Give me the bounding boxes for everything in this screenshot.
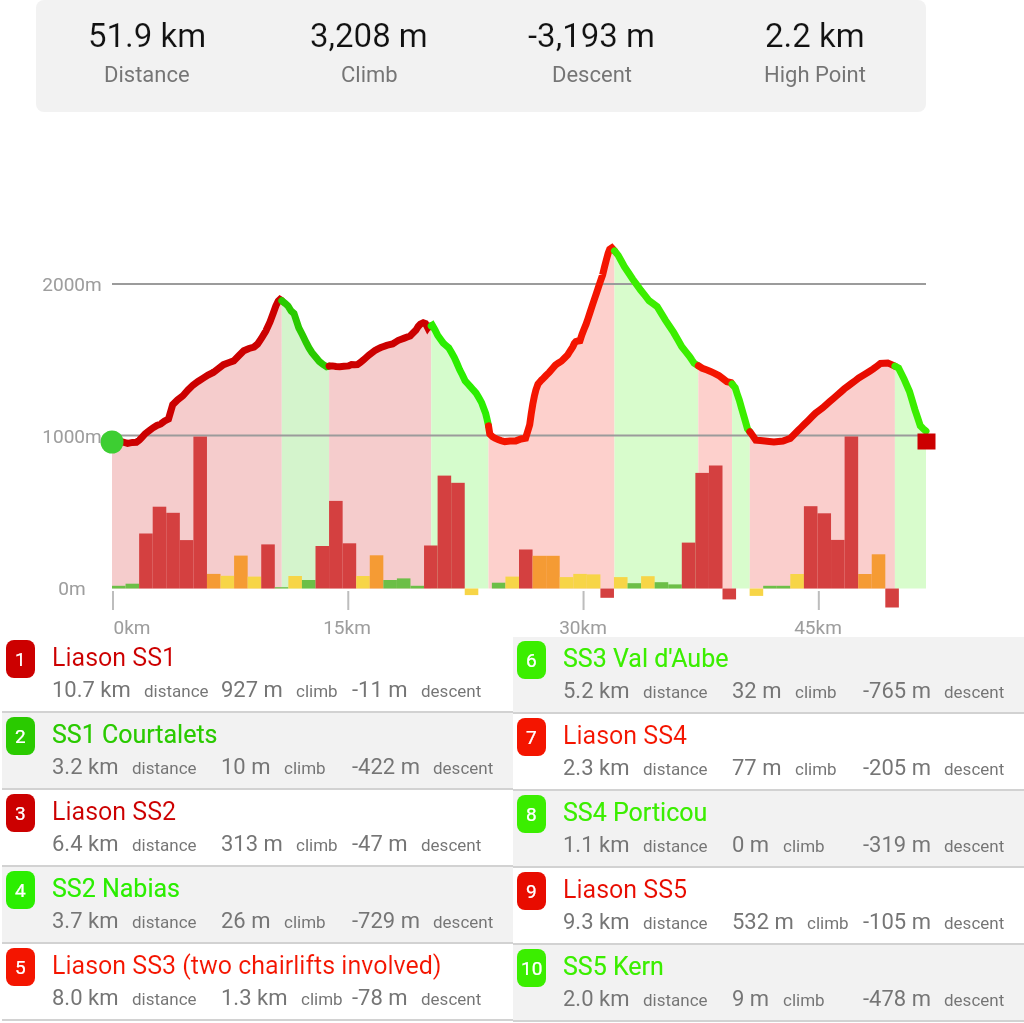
staticText: descent: [944, 913, 1005, 933]
staticText: 9: [526, 880, 537, 902]
staticText: -11 m: [352, 677, 408, 703]
staticText: 30km: [523, 616, 643, 638]
staticText: Distance: [104, 62, 190, 88]
staticText: SS4 Porticou: [563, 798, 708, 827]
staticText: 6: [526, 649, 537, 671]
staticText: descent: [944, 836, 1005, 856]
staticText: 4: [15, 879, 26, 901]
staticText: climb: [795, 682, 837, 702]
staticText: distance: [643, 913, 708, 933]
staticText: 3: [15, 802, 26, 824]
staticText: 1: [15, 648, 26, 670]
staticText: 6.4 km: [52, 831, 119, 857]
staticText: 927 m: [221, 677, 283, 703]
staticText: High Point: [764, 62, 866, 88]
button[interactable]: 1: [2, 636, 514, 711]
staticText: 1.1 km: [563, 832, 630, 858]
staticText: 532 m: [732, 909, 794, 935]
staticText: descent: [421, 681, 482, 701]
staticText: 1.3 km: [221, 985, 288, 1011]
button[interactable]: 3: [2, 790, 514, 865]
button[interactable]: 2: [2, 713, 514, 788]
staticText: distance: [643, 836, 708, 856]
staticText: distance: [132, 989, 197, 1009]
staticText: Liason SS2: [52, 797, 177, 826]
staticText: -422 m: [352, 754, 420, 780]
staticText: climb: [296, 835, 338, 855]
staticText: SS1 Courtalets: [52, 720, 218, 749]
staticText: climb: [296, 681, 338, 701]
staticText: descent: [421, 989, 482, 1009]
staticText: 10: [521, 957, 543, 979]
staticText: descent: [421, 835, 482, 855]
staticText: SS3 Val d'Aube: [563, 644, 729, 673]
staticText: 26 m: [221, 908, 271, 934]
staticText: -78 m: [352, 985, 408, 1011]
staticText: -319 m: [863, 832, 931, 858]
staticText: 9 m: [732, 986, 770, 1012]
staticText: 45km: [758, 616, 878, 638]
staticText: descent: [433, 758, 494, 778]
staticText: 1000m: [12, 425, 132, 447]
button[interactable]: 9: [513, 868, 1024, 943]
staticText: -478 m: [863, 986, 931, 1012]
button[interactable]: 8: [513, 791, 1024, 866]
staticText: distance: [643, 682, 708, 702]
staticText: 0m: [12, 577, 132, 599]
staticText: -765 m: [863, 678, 931, 704]
staticText: -47 m: [352, 831, 408, 857]
staticText: Liason SS4: [563, 721, 688, 750]
staticText: climb: [301, 989, 343, 1009]
staticText: 5.2 km: [563, 678, 630, 704]
staticText: descent: [944, 759, 1005, 779]
staticText: 77 m: [732, 755, 782, 781]
staticText: 3.7 km: [52, 908, 119, 934]
staticText: Liason SS1: [52, 643, 177, 672]
button[interactable]: 10: [513, 945, 1024, 1020]
staticText: distance: [132, 758, 197, 778]
staticText: 32 m: [732, 678, 782, 704]
staticText: 0 m: [732, 832, 770, 858]
staticText: 51.9 km: [88, 16, 207, 55]
button[interactable]: 7: [513, 714, 1024, 789]
staticText: 5: [15, 956, 26, 978]
staticText: distance: [144, 681, 209, 701]
button[interactable]: 51.9 km: [36, 0, 926, 112]
button[interactable]: 5: [2, 944, 514, 1019]
staticText: descent: [944, 990, 1005, 1010]
staticText: 2.3 km: [563, 755, 630, 781]
staticText: 3.2 km: [52, 754, 119, 780]
staticText: 2: [15, 725, 26, 747]
staticText: distance: [643, 759, 708, 779]
staticText: -729 m: [352, 908, 420, 934]
staticText: descent: [944, 682, 1005, 702]
staticText: 8: [526, 803, 537, 825]
staticText: SS5 Kern: [563, 952, 664, 981]
staticText: distance: [132, 912, 197, 932]
staticText: 10.7 km: [52, 677, 131, 703]
staticText: Liason SS5: [563, 875, 688, 904]
staticText: climb: [783, 836, 825, 856]
staticText: 3,208 m: [310, 16, 428, 55]
staticText: 2.2 km: [765, 16, 865, 55]
staticText: 10 m: [221, 754, 271, 780]
staticText: distance: [643, 990, 708, 1010]
staticText: -3,193 m: [528, 16, 655, 55]
button[interactable]: 6: [513, 637, 1024, 712]
staticText: descent: [433, 912, 494, 932]
staticText: -205 m: [863, 755, 931, 781]
staticText: Descent: [552, 62, 632, 88]
staticText: 9.3 km: [563, 909, 630, 935]
staticText: SS2 Nabias: [52, 874, 180, 903]
staticText: climb: [807, 913, 849, 933]
staticText: Climb: [341, 62, 398, 88]
button[interactable]: 4: [2, 867, 514, 942]
staticText: 15km: [287, 616, 407, 638]
staticText: 313 m: [221, 831, 283, 857]
staticText: climb: [783, 990, 825, 1010]
staticText: 8.0 km: [52, 985, 119, 1011]
staticText: climb: [284, 912, 326, 932]
staticText: Liason SS3 (two chairlifts involved): [52, 951, 442, 980]
staticText: -105 m: [863, 909, 931, 935]
staticText: 7: [526, 726, 537, 748]
